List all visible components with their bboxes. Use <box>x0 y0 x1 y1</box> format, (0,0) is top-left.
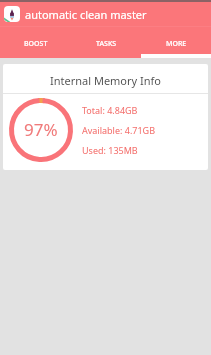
staticText: BOOST <box>24 39 48 49</box>
staticText: automatic clean master <box>25 7 147 22</box>
button[interactable]: MORE <box>141 27 211 58</box>
other: App icon <box>4 6 20 22</box>
staticText: TASKS <box>96 39 117 49</box>
staticText: Available: 4.71GB <box>82 124 156 136</box>
staticText: Total: 4.84GB <box>82 104 138 116</box>
staticText: 97% <box>24 118 58 141</box>
staticText: Internal Memory Info <box>3 73 208 88</box>
button[interactable]: BOOST <box>0 27 71 58</box>
staticText: Used: 135MB <box>82 144 138 156</box>
button[interactable]: TASKS <box>71 27 141 58</box>
button[interactable]: Internal Memory Info <box>3 64 208 170</box>
staticText: MORE <box>166 39 187 49</box>
